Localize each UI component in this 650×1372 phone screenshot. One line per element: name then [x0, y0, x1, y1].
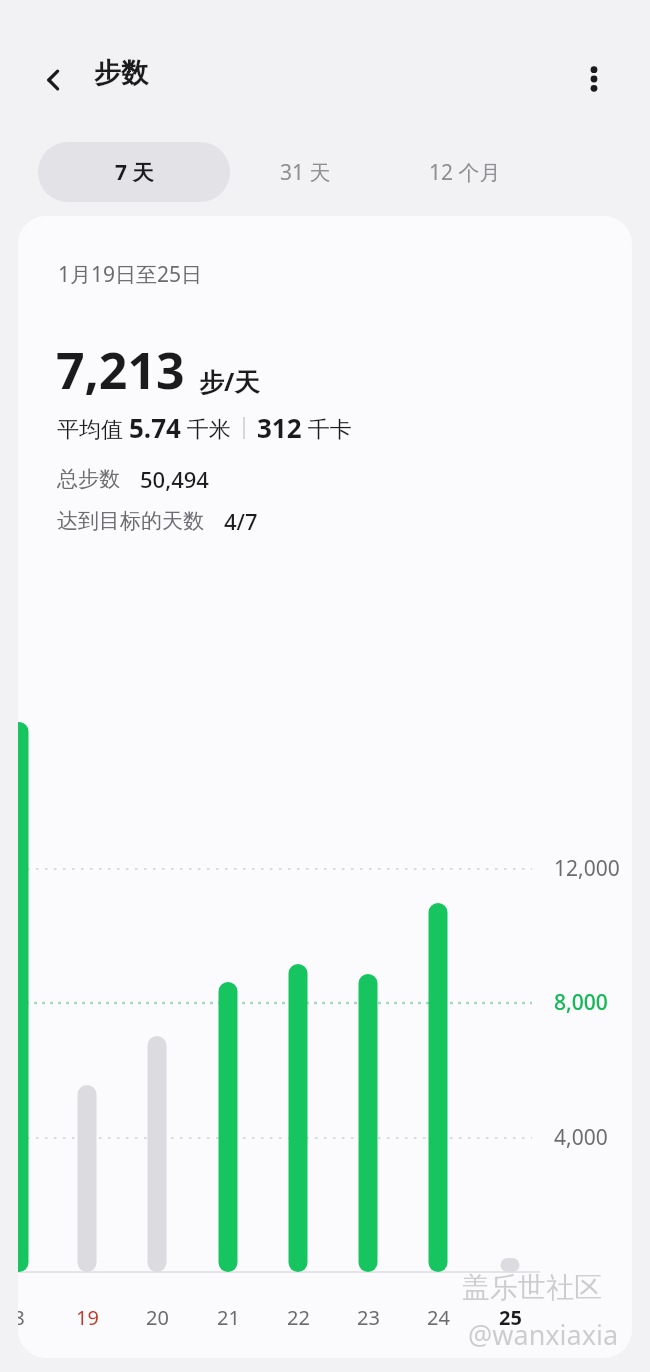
staticText: @wanxiaxia [468, 1316, 619, 1353]
staticText: 24 [427, 1304, 450, 1331]
button[interactable]: 12 个月 [380, 142, 550, 202]
staticText: 31 天 [280, 158, 331, 187]
staticText: 1月19日至25日 [58, 260, 203, 289]
staticText: 总步数 [57, 466, 120, 492]
staticText: 21 [217, 1304, 240, 1331]
staticText: 5.74 [129, 410, 181, 445]
staticText: 7,213 [56, 336, 185, 404]
staticText: 步/天 [199, 364, 260, 398]
staticText: 12,000 [554, 854, 620, 883]
button[interactable]: 7 天 [38, 142, 230, 202]
staticText: 7 天 [115, 158, 154, 187]
button[interactable]: Back [30, 56, 78, 104]
staticText: 8 [18, 1304, 25, 1331]
staticText: 19 [76, 1304, 99, 1331]
staticText: 千米 [181, 413, 231, 443]
staticText: 达到目标的天数 [57, 508, 204, 534]
staticText: 23 [357, 1304, 380, 1331]
staticText: 8,000 [554, 988, 608, 1017]
staticText: 4,000 [554, 1123, 608, 1152]
staticText: 50,494 [140, 464, 209, 494]
staticText: 4/7 [224, 506, 258, 536]
staticText: 步数 [94, 56, 148, 90]
staticText: 平均值 [57, 413, 129, 443]
staticText: 盖乐世社区 [462, 1270, 602, 1305]
staticText: 25 [499, 1304, 522, 1331]
staticText: 22 [287, 1304, 310, 1331]
button[interactable]: 31 天 [230, 142, 380, 202]
staticText: 20 [146, 1304, 169, 1331]
staticText: 12 个月 [429, 158, 501, 187]
staticText: 千卡 [302, 413, 352, 443]
button[interactable]: More options [570, 55, 618, 103]
staticText: 312 [257, 410, 302, 445]
